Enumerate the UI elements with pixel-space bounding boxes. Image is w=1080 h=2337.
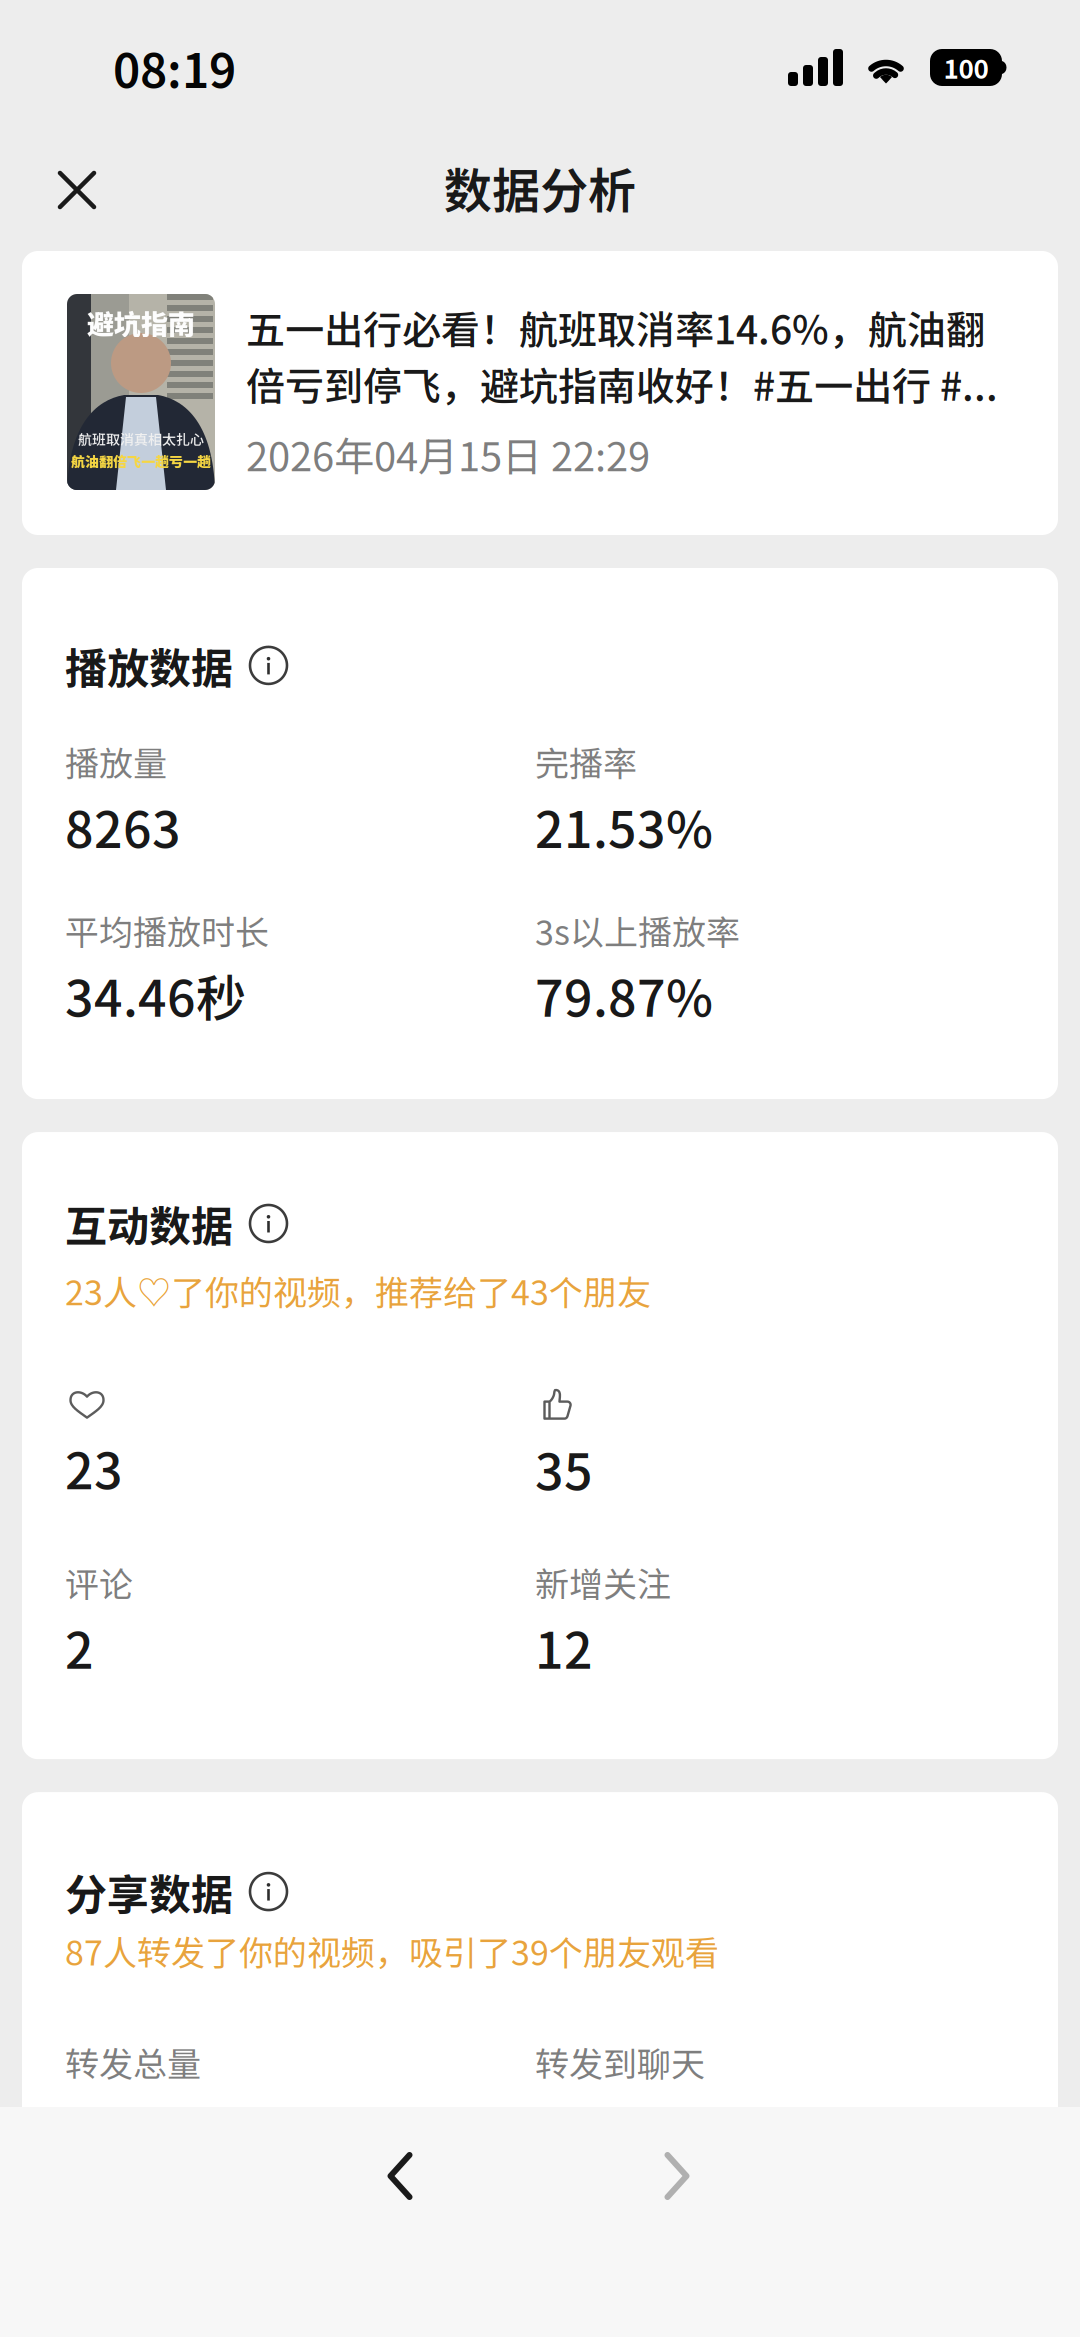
staticText: 12 bbox=[535, 1611, 593, 1683]
staticText: 航班取消真相太扎心 bbox=[78, 428, 204, 449]
staticText: 互动数据 bbox=[65, 1193, 233, 1254]
staticText: 航油翻倍飞一趟亏一趟 bbox=[71, 451, 211, 471]
staticText: 21.53% bbox=[535, 790, 713, 862]
staticText: 五一出行必看！航班取消率14.6%，航油翻倍亏到停飞，避坑指南收好！#五一出行 … bbox=[246, 299, 998, 412]
staticText: 23人♡了你的视频，推荐给了43个朋友 bbox=[65, 1266, 651, 1315]
staticText: 转发到聊天 bbox=[535, 2037, 705, 2086]
staticText: 2026年04月15日 22:29 bbox=[246, 425, 650, 483]
button[interactable]: 下一个 bbox=[617, 2107, 737, 2286]
staticText: 18 bbox=[535, 2090, 593, 2163]
staticText: 转发总量 bbox=[65, 2037, 201, 2086]
staticText: 完播率 bbox=[535, 737, 637, 786]
staticText: 分享数据 bbox=[65, 1861, 233, 1922]
staticText: 数据分析 bbox=[444, 153, 636, 222]
staticText: 2 bbox=[65, 1611, 94, 1683]
staticText: 87人转发了你的视频，吸引了39个朋友观看 bbox=[65, 1926, 719, 1975]
staticText: 23 bbox=[65, 1431, 123, 1503]
button[interactable]: 关闭 bbox=[0, 120, 154, 247]
staticText: 31 bbox=[65, 2090, 123, 2163]
staticText: 3s以上播放率 bbox=[535, 905, 740, 955]
staticText: 播放数据 bbox=[65, 635, 233, 696]
staticText: 平均播放时长 bbox=[65, 905, 269, 955]
staticText: 新增关注 bbox=[535, 1557, 671, 1607]
staticText: 79.87% bbox=[535, 959, 713, 1031]
staticText: 评论 bbox=[65, 1557, 133, 1607]
staticText: 35 bbox=[535, 1432, 593, 1504]
staticText: 34.46秒 bbox=[65, 959, 246, 1031]
button[interactable]: 上一个 bbox=[340, 2107, 460, 2286]
staticText: 避坑指南 bbox=[87, 303, 195, 342]
staticText: 100 bbox=[943, 49, 988, 86]
staticText: 08:19 bbox=[113, 33, 236, 102]
staticText: 8263 bbox=[65, 790, 181, 862]
staticText: 播放量 bbox=[65, 737, 167, 786]
